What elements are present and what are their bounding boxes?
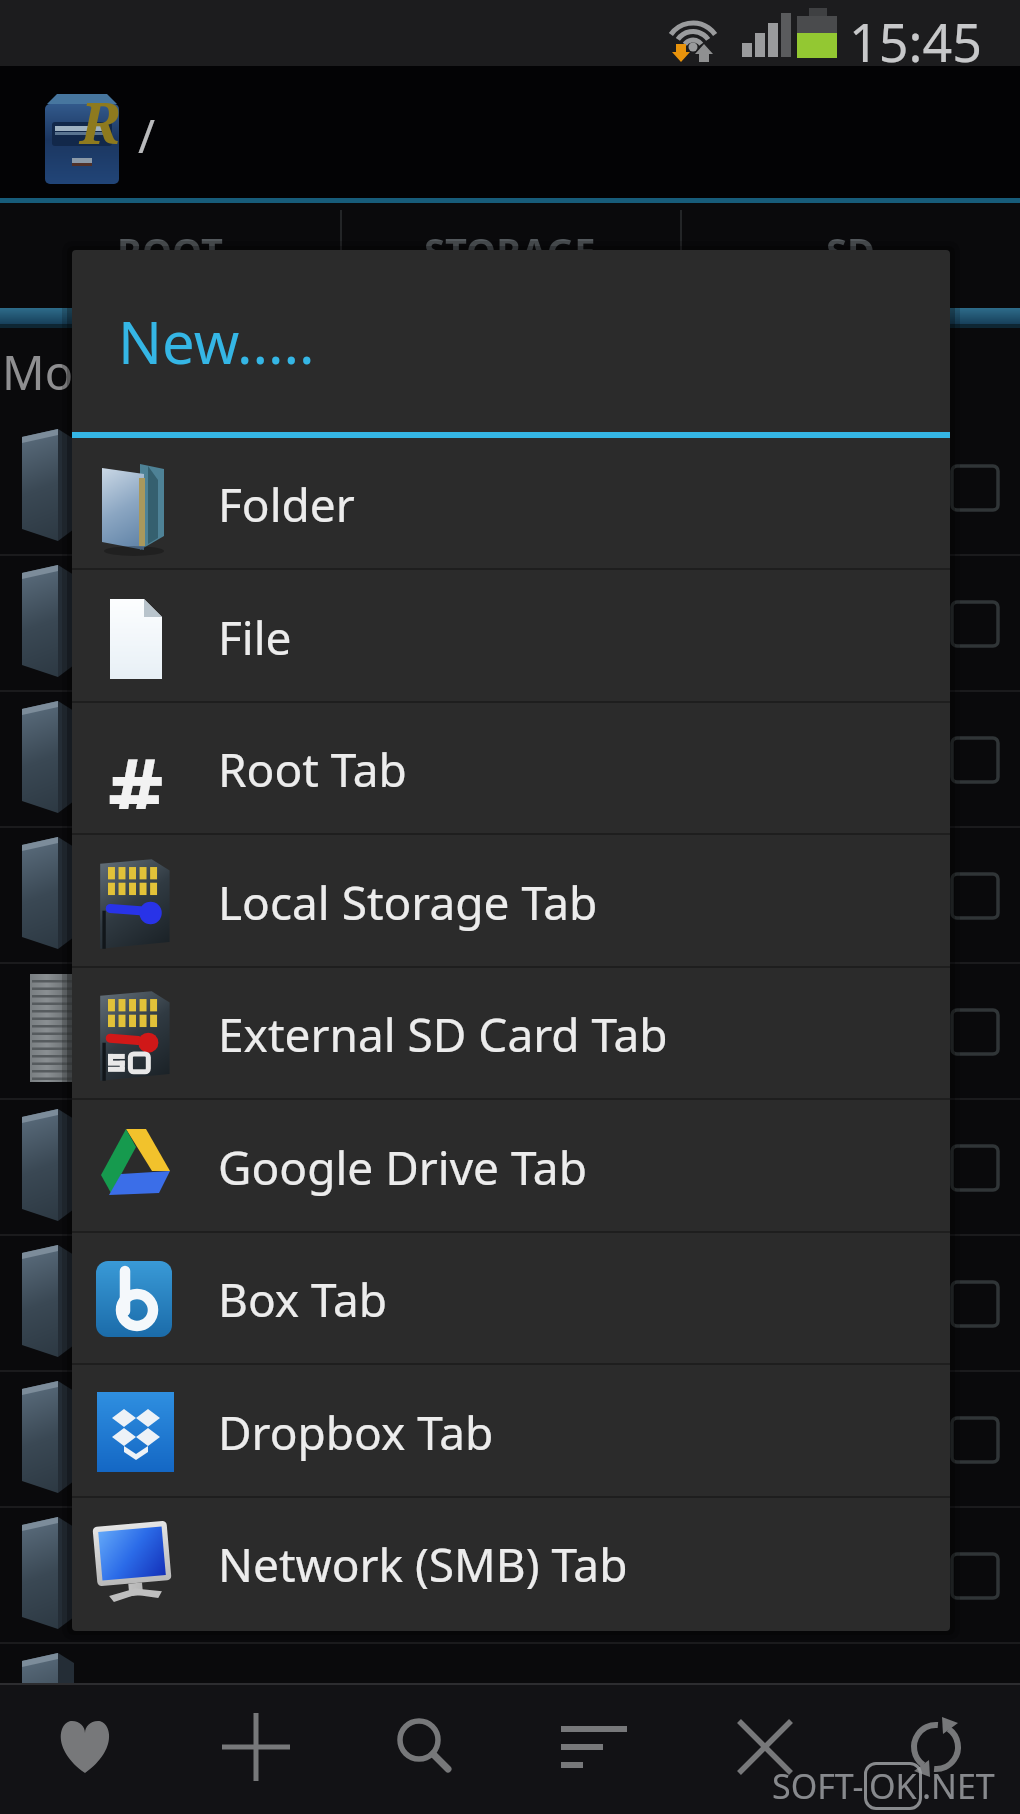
button[interactable]: ROOT xyxy=(0,203,340,308)
staticText: New..... xyxy=(118,302,315,381)
staticText: Local Storage Tab xyxy=(218,871,598,934)
staticText: 15:45 xyxy=(849,6,982,77)
button[interactable]: STORAGE xyxy=(340,203,680,308)
button[interactable]: Local Storage Tab xyxy=(72,836,950,968)
staticText: Box Tab xyxy=(218,1268,388,1331)
staticText: External SD Card Tab xyxy=(218,1003,668,1066)
button[interactable] xyxy=(695,1690,835,1808)
staticText: Google Drive Tab xyxy=(218,1136,587,1199)
button[interactable] xyxy=(15,1690,155,1808)
staticText: Network (SMB) Tab xyxy=(218,1533,628,1596)
staticText: File xyxy=(218,606,292,669)
button[interactable]: Folder xyxy=(72,438,950,570)
staticText: / xyxy=(138,104,156,167)
staticText: Root Tab xyxy=(218,738,407,801)
staticText: Mou xyxy=(2,340,103,404)
staticText: SD xyxy=(826,225,875,277)
button[interactable]: # xyxy=(72,703,950,835)
button[interactable] xyxy=(866,1690,1006,1808)
button[interactable]: Network (SMB) Tab xyxy=(72,1498,950,1630)
staticText: ROOT xyxy=(117,225,223,277)
button[interactable] xyxy=(186,1690,326,1808)
staticText: .NET xyxy=(922,1763,995,1809)
staticText: R xyxy=(80,84,120,160)
staticText: SOFT- xyxy=(772,1763,864,1809)
button[interactable]: External SD Card Tab xyxy=(72,968,950,1100)
staticText: # xyxy=(108,729,164,809)
button[interactable]: Google Drive Tab xyxy=(72,1101,950,1233)
staticText: Folder xyxy=(218,473,355,536)
staticText: OK xyxy=(869,1763,917,1809)
button[interactable]: SD xyxy=(680,203,1020,308)
button[interactable]: File xyxy=(72,571,950,703)
button[interactable] xyxy=(356,1690,496,1808)
staticText: Dropbox Tab xyxy=(218,1401,494,1464)
button[interactable] xyxy=(524,1690,664,1808)
staticText: STORAGE xyxy=(424,225,596,277)
button[interactable]: Box Tab xyxy=(72,1233,950,1365)
button[interactable]: Dropbox Tab xyxy=(72,1366,950,1498)
